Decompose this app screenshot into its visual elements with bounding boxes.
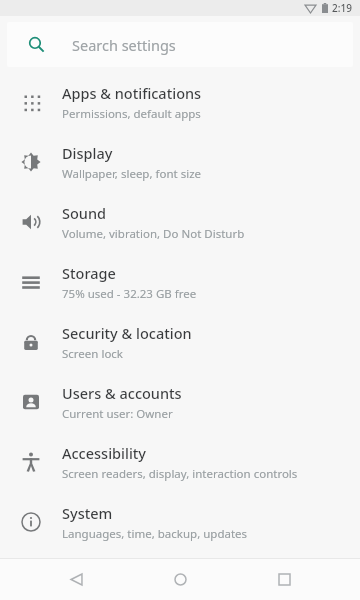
staticText: Sound	[62, 203, 107, 223]
staticText: Accessibility	[62, 443, 147, 463]
button[interactable]: Home	[152, 558, 208, 600]
button[interactable]: Search settings	[7, 22, 353, 67]
staticText: Security & location	[62, 323, 192, 343]
staticText: Users & accounts	[62, 383, 182, 403]
staticText: Languages, time, backup, updates	[62, 526, 248, 542]
button[interactable]: Accessibility	[0, 432, 360, 492]
staticText: Storage	[62, 263, 116, 283]
staticText: Current user: Owner	[62, 406, 173, 422]
staticText: Apps & notifications	[62, 83, 202, 103]
button[interactable]: Users & accounts	[0, 372, 360, 432]
staticText: 75% used - 32.23 GB free	[62, 286, 197, 302]
button[interactable]: Back	[48, 558, 104, 600]
staticText: Search settings	[72, 35, 176, 55]
staticText: Display	[62, 143, 113, 163]
button[interactable]: Sound	[0, 192, 360, 252]
staticText: 2:19	[332, 1, 352, 15]
staticText: Volume, vibration, Do Not Disturb	[62, 226, 245, 242]
staticText: Screen lock	[62, 346, 124, 362]
button[interactable]: Storage	[0, 252, 360, 312]
button[interactable]: Apps & notifications	[0, 72, 360, 132]
button[interactable]: Recent apps	[256, 558, 312, 600]
staticText: Permissions, default apps	[62, 106, 201, 122]
button[interactable]: Security & location	[0, 312, 360, 372]
staticText: Screen readers, display, interaction con…	[62, 466, 298, 482]
button[interactable]: Display	[0, 132, 360, 192]
staticText: System	[62, 503, 113, 523]
button[interactable]: System	[0, 492, 360, 552]
staticText: Wallpaper, sleep, font size	[62, 166, 202, 182]
